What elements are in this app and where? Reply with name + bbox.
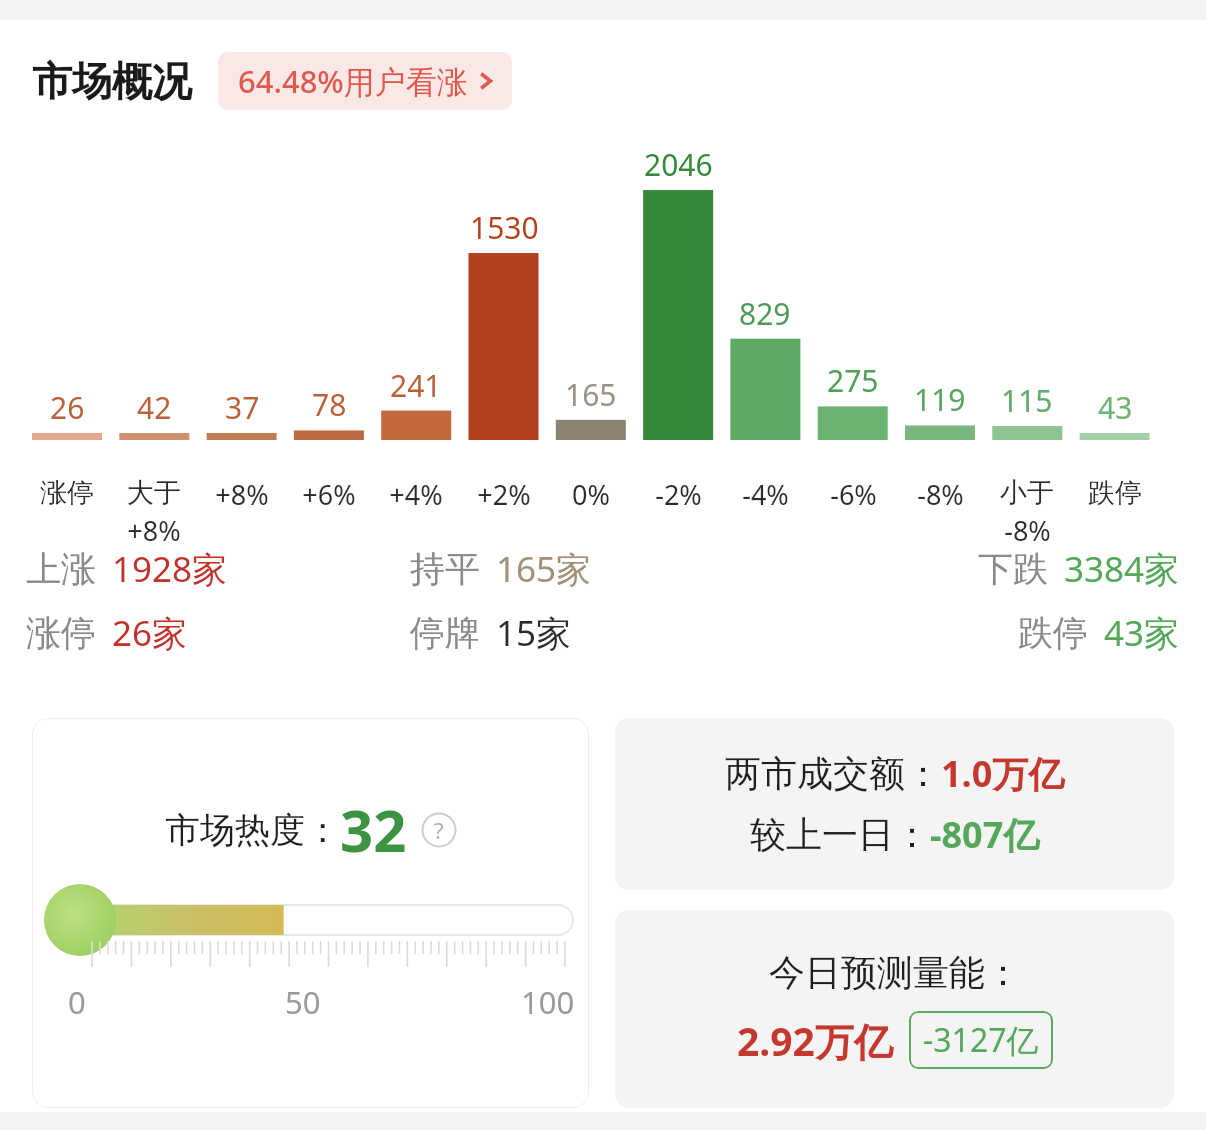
staticText: 119 bbox=[914, 379, 966, 420]
staticText: 0% bbox=[572, 476, 610, 513]
staticText: 78 bbox=[312, 384, 347, 425]
staticText: 42 bbox=[137, 387, 172, 428]
staticText: -4% bbox=[742, 476, 789, 513]
staticText: 涨停 bbox=[40, 476, 94, 510]
staticText: 下跌 bbox=[978, 547, 1048, 591]
staticText: 241 bbox=[390, 365, 442, 406]
staticText: -8% bbox=[917, 476, 964, 513]
staticText: 100 bbox=[521, 981, 575, 1023]
staticText: -2% bbox=[655, 476, 702, 513]
staticText: -807亿 bbox=[930, 810, 1040, 859]
staticText: 较上一日： bbox=[750, 812, 930, 857]
staticText: 2.92万亿 bbox=[737, 1014, 893, 1067]
staticText: 0 bbox=[68, 981, 86, 1023]
staticText: 165家 bbox=[496, 545, 592, 593]
staticText: 50 bbox=[285, 981, 321, 1023]
staticText: +8% bbox=[215, 476, 269, 513]
staticText: -6% bbox=[830, 476, 877, 513]
staticText: 跌停 bbox=[1018, 611, 1088, 655]
staticText: +2% bbox=[477, 476, 531, 513]
staticText: 上涨 bbox=[26, 547, 96, 591]
button[interactable]: 今日预测量能： bbox=[615, 910, 1174, 1108]
staticText: 两市成交额： bbox=[725, 751, 941, 796]
staticText: 37 bbox=[225, 387, 260, 428]
staticText: +4% bbox=[389, 476, 443, 513]
staticText: -3127亿 bbox=[923, 1018, 1039, 1062]
staticText: 涨停 bbox=[26, 611, 96, 655]
staticText: +6% bbox=[302, 476, 356, 513]
staticText: 64.48%用户看涨 bbox=[238, 60, 468, 102]
staticText: 市场概况 bbox=[32, 56, 192, 106]
staticText: 26 bbox=[50, 387, 85, 428]
staticText: 43 bbox=[1098, 387, 1133, 428]
staticText: 小于 bbox=[1000, 476, 1054, 510]
staticText: 275 bbox=[827, 360, 879, 401]
staticText: 115 bbox=[1001, 380, 1053, 421]
staticText: 43家 bbox=[1104, 609, 1180, 657]
staticText: 跌停 bbox=[1088, 476, 1142, 510]
staticText: 持平 bbox=[410, 547, 480, 591]
staticText: 26家 bbox=[112, 609, 188, 657]
staticText: 165 bbox=[565, 374, 617, 415]
staticText: 1.0万亿 bbox=[941, 749, 1065, 798]
button[interactable]: 市场热度： bbox=[32, 718, 589, 1108]
staticText: +8% bbox=[127, 512, 181, 549]
staticText: 2046 bbox=[644, 144, 713, 185]
staticText: ? bbox=[434, 815, 444, 845]
staticText: 1530 bbox=[470, 207, 539, 248]
button[interactable]: 说明 bbox=[421, 812, 457, 848]
staticText: 32 bbox=[340, 790, 407, 869]
staticText: 829 bbox=[739, 293, 791, 334]
button[interactable]: 两市成交额： bbox=[615, 718, 1174, 890]
staticText: -8% bbox=[1004, 512, 1051, 549]
staticText: 3384家 bbox=[1064, 545, 1180, 593]
staticText: 市场热度： bbox=[165, 808, 340, 852]
staticText: 1928家 bbox=[112, 545, 228, 593]
staticText: 15家 bbox=[496, 609, 572, 657]
button[interactable]: 64.48%用户看涨 bbox=[218, 52, 512, 110]
staticText: 大于 bbox=[127, 476, 181, 510]
staticText: 停牌 bbox=[410, 611, 480, 655]
staticText: 今日预测量能： bbox=[769, 950, 1021, 995]
